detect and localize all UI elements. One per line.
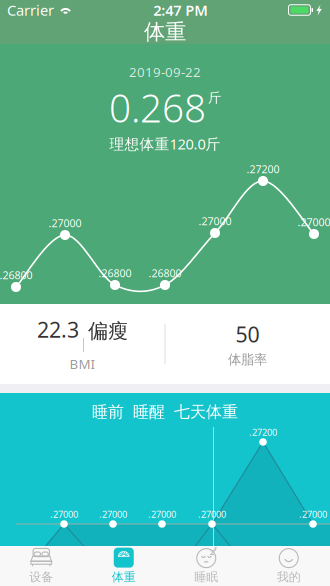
staticText: .27200: [246, 162, 279, 176]
staticText: 体脂率: [228, 351, 267, 368]
staticText: 睡前: [92, 402, 124, 422]
button[interactable]: 体重: [82, 546, 165, 586]
staticText: 斤: [208, 90, 221, 106]
button[interactable]: 七天体重: [174, 402, 238, 422]
button[interactable]: 睡眠: [165, 546, 247, 586]
staticText: 我的: [277, 570, 301, 584]
staticText: 偏瘦: [88, 319, 128, 343]
staticText: .27000: [299, 508, 327, 520]
staticText: .27000: [148, 508, 176, 520]
staticText: .27000: [198, 214, 231, 228]
staticText: 体重: [144, 19, 186, 45]
staticText: .27000: [297, 215, 330, 229]
staticText: BMI: [69, 355, 95, 373]
staticText: 设备: [29, 570, 53, 584]
staticText: 22.3: [37, 315, 79, 344]
staticText: 睡醒: [133, 402, 165, 422]
staticText: 理想体重120.0斤: [109, 134, 220, 154]
button[interactable]: 睡醒: [133, 402, 165, 422]
button[interactable]: 睡前: [92, 402, 124, 422]
staticText: .27000: [50, 508, 78, 520]
button[interactable]: 我的: [247, 546, 330, 586]
staticText: .27200: [249, 426, 277, 438]
staticText: .26800: [0, 268, 32, 282]
staticText: 七天体重: [174, 402, 238, 422]
staticText: .27000: [198, 508, 226, 520]
staticText: 2:47 PM: [153, 0, 208, 20]
staticText: 50: [235, 320, 259, 348]
staticText: .27000: [48, 216, 81, 230]
staticText: .27000: [99, 508, 127, 520]
staticText: 体重: [112, 570, 136, 584]
staticText: 2019-09-22: [129, 63, 201, 81]
staticText: .26800: [148, 266, 181, 280]
staticText: 睡眠: [194, 570, 218, 584]
staticText: 0.268: [109, 82, 206, 133]
staticText: .26800: [98, 266, 131, 280]
staticText: Carrier: [7, 0, 54, 20]
button[interactable]: 设备: [0, 546, 82, 586]
